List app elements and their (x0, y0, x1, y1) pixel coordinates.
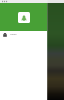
button[interactable]: Home (0, 31, 47, 38)
staticText: Home (10, 33, 17, 36)
